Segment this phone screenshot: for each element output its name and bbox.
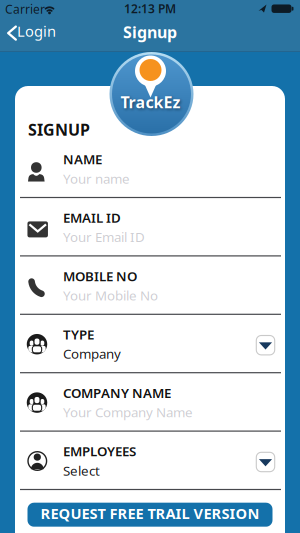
button[interactable]: Login xyxy=(5,22,60,45)
button[interactable]: TYPE xyxy=(62,326,282,373)
staticText: MOBILE NO xyxy=(63,267,137,285)
staticText: TYPE xyxy=(63,325,94,343)
button[interactable] xyxy=(256,335,275,355)
staticText: EMPLOYEES xyxy=(63,442,136,460)
staticText: REQUEST FREE TRAIL VERSION xyxy=(40,504,259,523)
staticText: Signup xyxy=(123,21,177,43)
staticText: Your Email ID xyxy=(63,228,145,246)
staticText: Your Company Name xyxy=(63,403,193,421)
button[interactable]: MOBILE NO xyxy=(62,267,282,314)
staticText: Company xyxy=(63,345,121,362)
staticText: SIGNUP xyxy=(28,119,90,140)
staticText: Login xyxy=(17,21,56,41)
staticText: Your Mobile No xyxy=(63,286,158,304)
staticText: EMAIL ID xyxy=(63,209,121,226)
staticText: COMPANY NAME xyxy=(63,384,171,402)
button[interactable]: REQUEST FREE TRAIL VERSION xyxy=(27,503,272,527)
staticText: Carrier xyxy=(5,1,45,17)
button[interactable]: COMPANY NAME xyxy=(62,384,282,431)
button[interactable] xyxy=(256,452,275,472)
button[interactable]: NAME xyxy=(62,150,282,197)
button[interactable]: EMPLOYEES xyxy=(62,442,282,489)
staticText: NAME xyxy=(63,150,102,168)
staticText: Your name xyxy=(63,170,130,187)
staticText: TrackEz xyxy=(120,91,180,113)
staticText: Select xyxy=(63,462,100,479)
staticText: 12:13 PM xyxy=(124,1,176,17)
button[interactable]: EMAIL ID xyxy=(62,209,282,256)
